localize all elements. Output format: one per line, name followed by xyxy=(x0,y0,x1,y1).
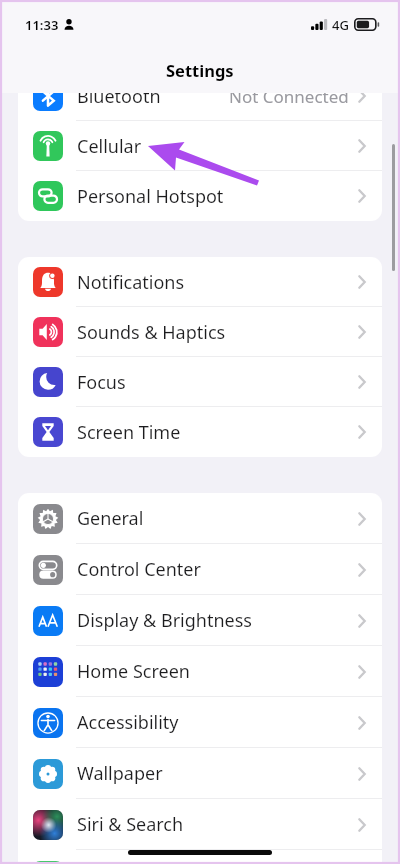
staticText: Focus xyxy=(77,370,126,395)
staticText: Control Center xyxy=(77,557,201,582)
button[interactable]: Notifications xyxy=(18,257,382,307)
button[interactable]: Screen Time xyxy=(18,407,382,457)
button[interactable]: Accessibility xyxy=(18,697,382,748)
button[interactable]: Bluetooth xyxy=(18,71,382,121)
button[interactable]: Face ID & Passcode xyxy=(18,850,382,864)
button[interactable]: Personal Hotspot xyxy=(18,171,382,221)
staticText: 4G xyxy=(332,16,349,34)
staticText: Settings xyxy=(166,59,234,81)
button[interactable]: Wallpaper xyxy=(18,748,382,799)
button[interactable]: Sounds & Haptics xyxy=(18,307,382,357)
staticText: Not Connected xyxy=(229,85,349,108)
staticText: Siri & Search xyxy=(77,812,184,837)
staticText: Notifications xyxy=(77,270,185,295)
staticText: General xyxy=(77,506,144,531)
staticText: Cellular xyxy=(77,134,142,159)
button[interactable]: Focus xyxy=(18,357,382,407)
staticText: Wallpaper xyxy=(77,761,163,786)
button[interactable]: Control Center xyxy=(18,544,382,595)
button[interactable]: Cellular xyxy=(18,121,382,171)
button[interactable]: Siri & Search xyxy=(18,799,382,850)
staticText: Personal Hotspot xyxy=(77,184,224,209)
staticText: 11:33 xyxy=(25,16,59,34)
staticText: Home Screen xyxy=(77,659,190,684)
staticText: Bluetooth xyxy=(77,84,161,109)
button[interactable]: Home Screen xyxy=(18,646,382,697)
staticText: Display & Brightness xyxy=(77,608,252,633)
button[interactable]: Display & Brightness xyxy=(18,595,382,646)
button[interactable]: General xyxy=(18,493,382,544)
staticText: Accessibility xyxy=(77,710,179,735)
staticText: Screen Time xyxy=(77,420,181,445)
staticText: Sounds & Haptics xyxy=(77,320,226,345)
